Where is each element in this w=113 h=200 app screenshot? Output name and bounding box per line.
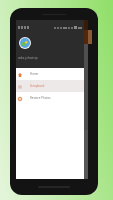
button[interactable]: Home bbox=[16, 68, 84, 80]
button[interactable]: Scrapbook bbox=[16, 80, 84, 92]
staticText: Restore Photos bbox=[30, 96, 51, 100]
staticText: ada.jchatnp bbox=[18, 55, 38, 60]
staticText: Home bbox=[30, 72, 39, 76]
button[interactable]: Restore Photos bbox=[16, 92, 84, 104]
staticText: Scrapbook bbox=[30, 84, 45, 88]
